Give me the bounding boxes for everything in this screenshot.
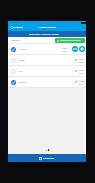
other: Back [10,26,13,29]
staticText: Antoine [19,48,27,51]
staticText: Lundi 15 [10,21,19,24]
staticText: 0.00 € [62,50,68,52]
staticText: Romain [19,81,27,84]
staticText: Léa [19,70,23,73]
staticText: 0 part [79,69,85,72]
button[interactable]: Back [10,24,24,31]
button[interactable]: Edit [74,69,78,73]
staticText: 0.00 € [79,83,85,85]
button[interactable]: Emilie [8,54,86,65]
staticText: 1 part [62,47,68,50]
staticText: 1 part [79,80,85,83]
button[interactable]: Edit [74,80,78,84]
button[interactable]: Remove share [72,46,78,52]
button[interactable]: Edit [74,58,78,62]
staticText: 0.00 € [79,72,85,74]
staticText: Bénéficiaires - Payé par : Antoine [29,33,59,36]
button[interactable]: Add share [79,46,85,52]
staticText: Membres [11,39,20,42]
staticText: Sommaire [13,26,24,29]
staticText: 0.00 € [79,61,85,63]
button[interactable]: Enregistrer [8,154,86,162]
button[interactable]: Romain [8,76,86,87]
staticText: Nouvelle dépense [38,26,56,29]
button[interactable]: Léa [8,65,86,76]
button[interactable]: Antoine [8,43,86,54]
staticText: 0 part [79,58,85,61]
staticText: Enregistrer [43,157,55,160]
staticText: Cocher tout le monde [60,39,81,42]
staticText: Emilie [19,59,25,62]
button[interactable]: Cocher tout le monde [57,38,85,43]
